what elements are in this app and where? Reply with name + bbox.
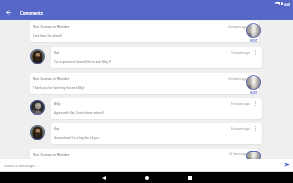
button[interactable]: Back — [2, 6, 15, 19]
staticText: 3 minutes ago — [231, 51, 250, 55]
staticText: Leave a message... — [4, 163, 38, 168]
staticText: Kat — [54, 50, 231, 55]
staticText: 5 minutes ago — [228, 77, 247, 81]
button[interactable]: Ron Gureau in Wonder — [30, 73, 259, 94]
staticText: 6 minutes ago — [231, 102, 250, 106]
button[interactable]: Kat — [51, 47, 262, 68]
button[interactable]: Ron Gureau in Wonder — [30, 21, 259, 42]
staticText: Comments — [20, 10, 43, 16]
button[interactable]: More options — [253, 126, 258, 131]
button[interactable]: More options — [250, 152, 255, 157]
staticText: Great show! I'm a big fan of you. — [54, 136, 100, 140]
button[interactable]: Ron Gureau in Wonder — [30, 149, 259, 159]
staticText: Ron Gureau in Wonder — [33, 76, 228, 81]
staticText: Agree with Kat. Great show indeed! — [54, 111, 104, 115]
staticText: 2 minutes ago — [228, 25, 247, 29]
staticText: Ron Gureau in Wonder — [33, 24, 228, 29]
button[interactable]: More options — [253, 50, 258, 55]
staticText: HOST — [250, 91, 258, 95]
button[interactable]: More options — [253, 101, 258, 106]
button[interactable]: More options — [250, 76, 255, 81]
staticText: Ron Gureau in Wonder — [33, 152, 229, 157]
button[interactable]: More options — [250, 24, 255, 29]
button[interactable]: Billy — [51, 98, 262, 119]
button[interactable]: Kat — [51, 123, 262, 144]
staticText: 8 minutes ago — [231, 127, 250, 131]
staticText: 4:41 — [284, 2, 291, 7]
staticText: HOST — [250, 39, 258, 43]
button[interactable]: Send — [281, 159, 292, 170]
staticText: Kat — [54, 126, 231, 131]
staticText: 14 hours ago — [229, 152, 247, 156]
button[interactable]: Home — [141, 172, 152, 183]
staticText: Sure that. Go ahead! — [33, 34, 62, 38]
button[interactable]: Recent apps — [184, 172, 195, 183]
button[interactable]: Back — [98, 172, 109, 183]
staticText: I've a question I would like to ask. May… — [54, 60, 112, 64]
staticText: Thank you for listening Kat and Billy! — [33, 86, 85, 90]
staticText: Billy — [54, 101, 231, 106]
